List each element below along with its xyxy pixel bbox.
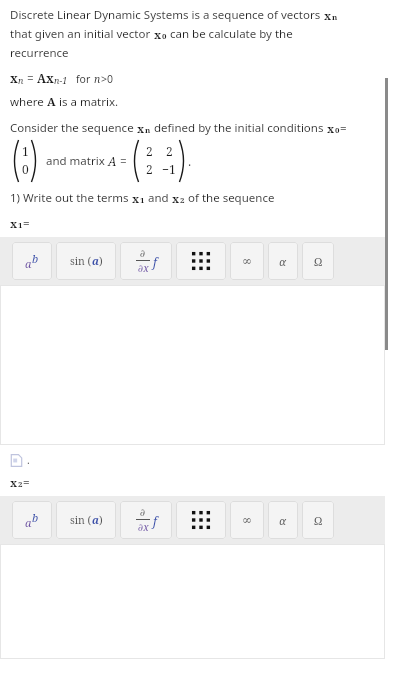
button[interactable]: Superscript — [12, 242, 52, 280]
staticText: = — [23, 215, 30, 231]
staticText: . — [27, 453, 30, 467]
staticText: sin ( — [70, 513, 92, 527]
staticText: ∞ — [242, 513, 252, 527]
staticText: and matrix — [46, 153, 108, 169]
staticText: −1 — [162, 161, 176, 177]
staticText: 0 — [22, 161, 29, 177]
staticText: ∂ — [140, 507, 146, 519]
staticText: >0 — [101, 72, 114, 86]
staticText: n — [94, 72, 101, 86]
staticText: x — [10, 70, 18, 86]
staticText: x — [172, 191, 180, 206]
staticText: A — [108, 153, 117, 169]
staticText: b — [32, 510, 39, 525]
staticText: ∂ — [140, 248, 146, 260]
staticText: Ω — [314, 513, 323, 528]
staticText: 2 — [146, 143, 153, 159]
staticText: defined by the initial conditions — [151, 120, 327, 136]
staticText: x — [10, 216, 18, 231]
staticText: ∞ — [242, 254, 252, 268]
button[interactable]: Trig functions — [56, 501, 116, 539]
staticText: 2 — [146, 161, 153, 177]
staticText: . — [188, 153, 192, 169]
other: Attachment — [10, 454, 23, 467]
staticText: a — [25, 256, 32, 271]
staticText: recurrence — [10, 45, 69, 61]
button[interactable]: Alpha — [268, 501, 298, 539]
staticText: of the sequence — [185, 190, 275, 206]
staticText: = — [117, 153, 130, 169]
staticText: x — [327, 121, 335, 136]
staticText: that given an initial vector — [10, 26, 154, 42]
staticText: f — [153, 513, 157, 529]
button[interactable] — [0, 285, 385, 445]
button[interactable]: Derivative — [120, 501, 172, 539]
button[interactable]: Superscript — [12, 501, 52, 539]
staticText: is a matrix. — [56, 94, 119, 110]
staticText: ) — [99, 254, 103, 268]
staticText: 0 — [162, 31, 167, 42]
button[interactable]: Matrix — [176, 242, 226, 280]
staticText: ) — [99, 513, 103, 527]
button[interactable]: Alpha — [268, 242, 298, 280]
staticText: for — [76, 72, 94, 86]
staticText: sin ( — [70, 254, 92, 268]
staticText: 2 — [18, 479, 23, 490]
staticText: ∂x — [138, 261, 149, 275]
staticText: and — [145, 190, 172, 206]
staticText: α — [279, 513, 287, 528]
button[interactable]: Omega symbols — [302, 242, 334, 280]
staticText: n−1 — [54, 74, 68, 86]
staticText: n — [18, 74, 24, 86]
staticText: 2 — [180, 195, 185, 206]
staticText: 2 — [166, 143, 173, 159]
staticText: Ω — [314, 254, 323, 269]
staticText: a — [92, 254, 99, 268]
staticText: = — [24, 70, 37, 86]
staticText: f — [153, 254, 157, 270]
staticText: Ax — [37, 70, 54, 86]
staticText: a — [92, 513, 99, 527]
staticText: a — [25, 515, 32, 530]
staticText: x — [137, 121, 145, 136]
staticText: = — [340, 120, 347, 136]
staticText: n — [332, 12, 338, 23]
staticText: where — [10, 94, 47, 110]
staticText: Discrete Linear Dynamic Systems is a seq… — [10, 7, 324, 23]
button[interactable]: Infinity — [230, 242, 264, 280]
staticText: 1 — [140, 195, 145, 206]
button[interactable] — [0, 544, 385, 659]
staticText: 1 — [22, 143, 29, 159]
staticText: can be calculate by the — [167, 26, 293, 42]
staticText: 0 — [335, 125, 340, 136]
staticText: α — [279, 254, 287, 269]
button[interactable]: Trig functions — [56, 242, 116, 280]
staticText: x — [324, 8, 332, 23]
button[interactable]: Derivative — [120, 242, 172, 280]
staticText: ∂x — [138, 520, 149, 534]
button[interactable]: Infinity — [230, 501, 264, 539]
staticText: Consider the sequence — [10, 120, 137, 136]
staticText: A — [47, 94, 56, 110]
staticText: 1 — [18, 220, 23, 231]
staticText: x — [154, 27, 162, 42]
button[interactable]: Omega symbols — [302, 501, 334, 539]
staticText: = — [23, 474, 30, 490]
staticText: n — [145, 125, 151, 136]
button[interactable]: Matrix — [176, 501, 226, 539]
staticText: 1) Write out the terms — [10, 190, 132, 206]
staticText: b — [32, 251, 39, 266]
staticText: x — [10, 475, 18, 490]
staticText: x — [132, 191, 140, 206]
